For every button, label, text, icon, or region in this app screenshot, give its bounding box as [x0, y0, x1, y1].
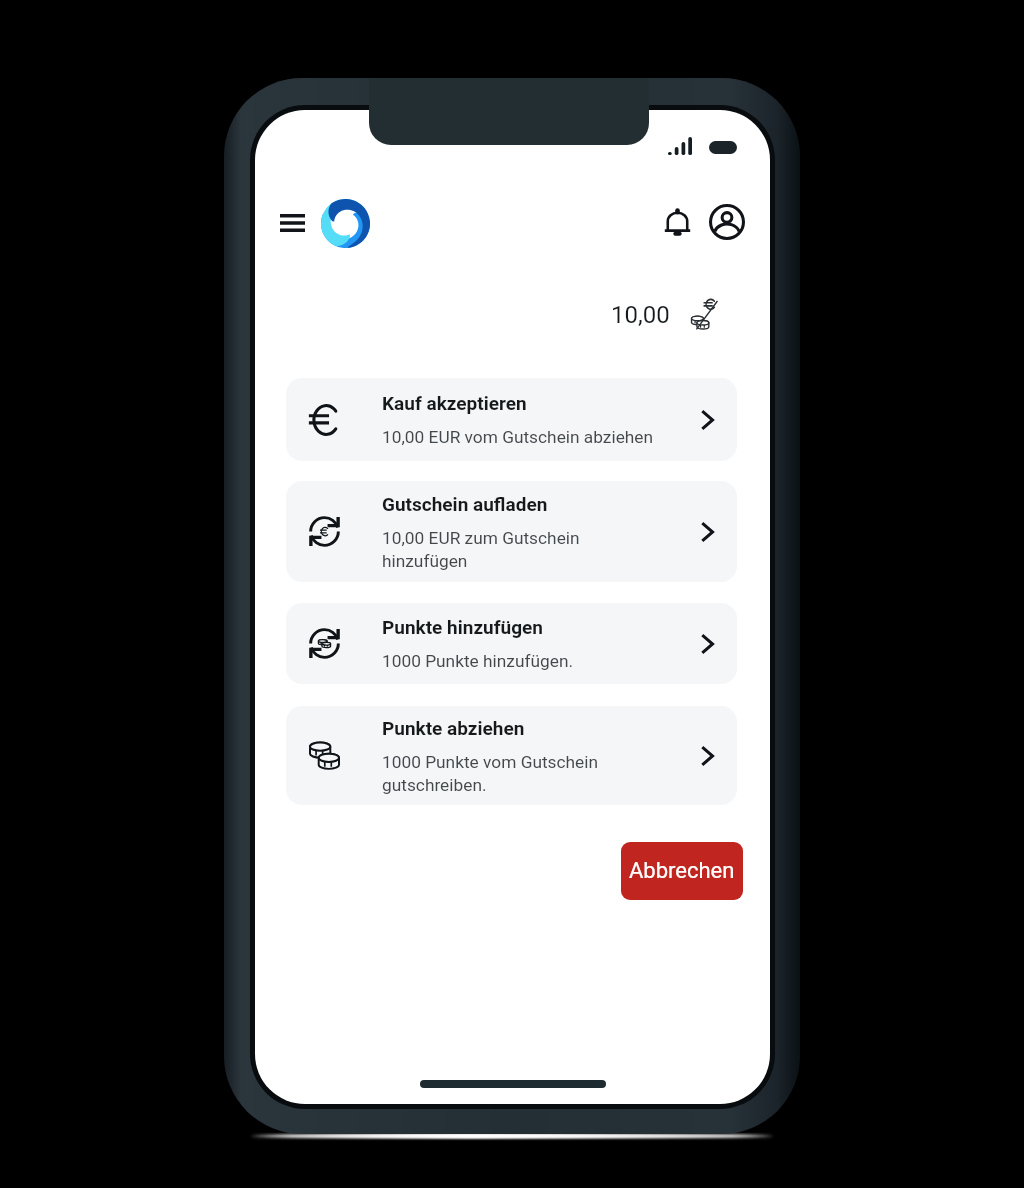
button[interactable]: Notifications [654, 200, 700, 246]
button[interactable]: Account [704, 199, 750, 245]
staticText: Kauf akzeptieren [382, 392, 527, 414]
staticText: Punkte abziehen [382, 717, 525, 739]
staticText: 1000 Punkte hinzufügen. [382, 651, 574, 671]
button[interactable]: Home [317, 195, 373, 251]
staticText: 10,00 [611, 301, 670, 329]
button[interactable]: Menu [268, 199, 316, 247]
staticText: 1000 Punkte vom Gutschein gutschreiben. [382, 752, 599, 795]
staticText: 10,00 EUR zum Gutschein hinzufügen [382, 528, 580, 571]
button[interactable]: Punkte abziehen [286, 706, 737, 805]
staticText: Abbrechen [629, 858, 735, 884]
button[interactable]: Kauf akzeptieren [286, 378, 737, 461]
staticText: 10,00 EUR vom Gutschein abziehen [382, 427, 654, 447]
staticText: Punkte hinzufügen [382, 616, 543, 638]
button[interactable]: Punkte hinzufügen [286, 603, 737, 684]
button[interactable]: Gutschein aufladen [286, 481, 737, 582]
staticText: Gutschein aufladen [382, 493, 548, 515]
button[interactable]: Abbrechen [621, 842, 743, 900]
